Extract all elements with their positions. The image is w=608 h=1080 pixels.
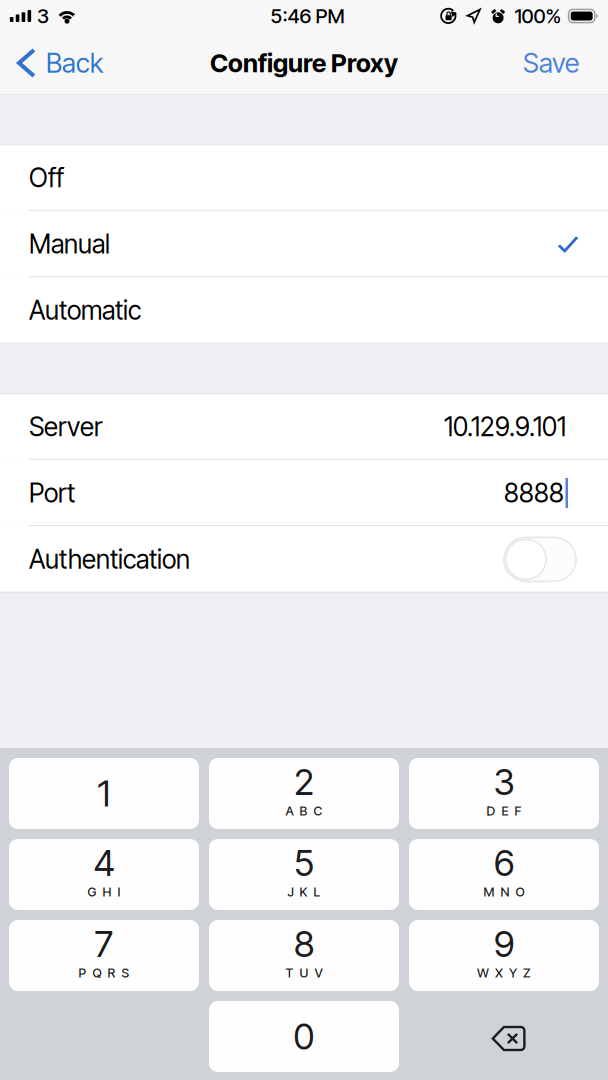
button[interactable]: 1 bbox=[9, 758, 199, 829]
staticText: 5 bbox=[294, 841, 314, 885]
staticText: 2 bbox=[294, 760, 314, 804]
staticText: D E F bbox=[486, 803, 521, 819]
staticText: M N O bbox=[483, 884, 524, 900]
staticText: Authentication bbox=[29, 544, 190, 575]
staticText: 1 bbox=[97, 772, 110, 815]
button[interactable]: 4 bbox=[9, 839, 199, 910]
staticText: 0 bbox=[293, 1015, 314, 1058]
staticText: 6 bbox=[494, 841, 514, 885]
staticText: Configure Proxy bbox=[210, 48, 398, 78]
button[interactable]: 8 bbox=[209, 920, 399, 991]
staticText: 7 bbox=[94, 922, 113, 966]
staticText: 3 bbox=[493, 760, 514, 804]
button[interactable]: 3 bbox=[409, 758, 599, 829]
button[interactable]: Authentication bbox=[504, 537, 576, 581]
staticText: Manual bbox=[29, 228, 110, 260]
staticText: 8 bbox=[294, 922, 314, 966]
staticText: 10.129.9.101 bbox=[444, 411, 566, 442]
staticText: Automatic bbox=[29, 295, 141, 326]
staticText: T U V bbox=[285, 965, 322, 981]
staticText: 3 bbox=[37, 4, 49, 28]
button[interactable]: 6 bbox=[409, 839, 599, 910]
staticText: Port bbox=[29, 477, 75, 509]
button[interactable]: Back bbox=[0, 32, 117, 94]
staticText: Off bbox=[29, 162, 64, 193]
button[interactable]: 0 bbox=[209, 1001, 399, 1072]
button[interactable]: 2 bbox=[209, 758, 399, 829]
staticText: 4 bbox=[93, 841, 114, 885]
staticText: 8888 bbox=[504, 477, 564, 509]
staticText: J K L bbox=[287, 884, 320, 900]
button[interactable]: 5 bbox=[209, 839, 399, 910]
staticText: A B C bbox=[285, 803, 322, 819]
button[interactable]: Manual bbox=[0, 211, 608, 277]
staticText: 100% bbox=[515, 4, 562, 28]
staticText: P Q R S bbox=[78, 965, 129, 981]
button[interactable]: 7 bbox=[9, 920, 199, 991]
button[interactable]: Server bbox=[0, 393, 608, 460]
button[interactable]: Off bbox=[0, 144, 608, 211]
button[interactable]: Automatic bbox=[0, 277, 608, 343]
staticText: Server bbox=[29, 411, 102, 442]
button[interactable]: 9 bbox=[409, 920, 599, 991]
staticText: W X Y Z bbox=[477, 965, 531, 981]
button[interactable]: Port bbox=[0, 460, 608, 526]
staticText: Save bbox=[523, 47, 579, 79]
staticText: Back bbox=[46, 47, 103, 79]
staticText: 9 bbox=[494, 922, 514, 966]
staticText: 5:46 PM bbox=[270, 4, 344, 28]
button[interactable]: Delete bbox=[409, 1001, 599, 1072]
button[interactable]: Save bbox=[507, 32, 608, 94]
staticText: G H I bbox=[87, 884, 120, 900]
